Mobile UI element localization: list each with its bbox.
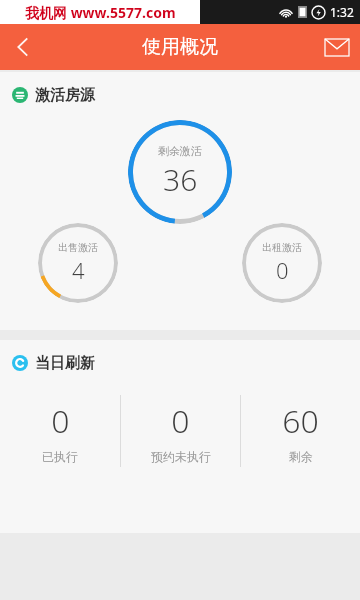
button[interactable]: Messages <box>314 24 360 70</box>
button[interactable]: 出租激活 <box>242 223 322 303</box>
staticText: 出租激活 <box>262 241 302 254</box>
staticText: 0 <box>276 255 289 285</box>
staticText: 出售激活 <box>58 241 98 254</box>
staticText: 预约未执行 <box>151 449 211 464</box>
staticText: 使用概况 <box>142 35 218 59</box>
staticText: 4 <box>72 255 85 285</box>
staticText: 1:32 <box>330 4 354 20</box>
staticText: 剩余 <box>289 449 313 464</box>
button[interactable]: 0 <box>121 399 240 464</box>
staticText: 0 <box>171 399 190 443</box>
button[interactable]: Back <box>0 24 46 70</box>
staticText: 我机网 www.5577.com <box>25 3 176 22</box>
staticText: 36 <box>163 159 198 200</box>
button[interactable]: 剩余激活 <box>128 120 232 224</box>
staticText: 已执行 <box>42 449 78 464</box>
staticText: 当日刷新 <box>35 354 95 373</box>
button[interactable]: 60 <box>241 399 360 464</box>
staticText: 剩余激活 <box>158 144 202 158</box>
staticText: 0 <box>51 399 70 443</box>
staticText: 60 <box>282 399 319 443</box>
button[interactable]: 出售激活 <box>38 223 118 303</box>
staticText: 激活房源 <box>35 86 95 105</box>
button[interactable]: 0 <box>0 399 120 464</box>
